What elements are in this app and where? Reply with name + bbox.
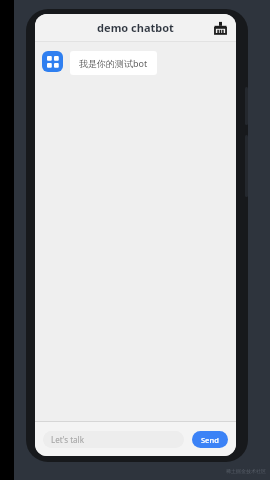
staticText: 我是你的测试bot	[79, 57, 148, 69]
staticText: Let's talk	[51, 434, 84, 445]
button[interactable]: Bot avatar	[42, 51, 63, 72]
staticText: demo chatbot	[97, 20, 174, 35]
button[interactable]: Send	[192, 431, 228, 448]
staticText: 稀土掘金技术社区	[226, 468, 266, 474]
button[interactable]: Let's talk	[43, 431, 184, 448]
button[interactable]: 我是你的测试bot	[70, 51, 157, 75]
staticText: Send	[201, 435, 219, 445]
button[interactable]: Clear conversation	[210, 18, 230, 38]
